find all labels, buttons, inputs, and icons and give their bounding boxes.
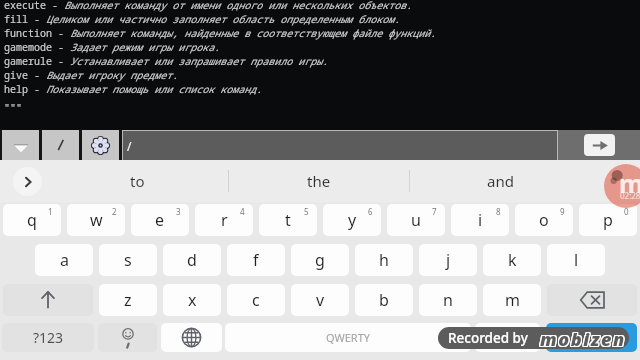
button[interactable]: . [475,323,540,352]
button[interactable]: g [291,244,349,276]
staticText: 1 [48,206,53,217]
button[interactable]: j [419,244,477,276]
staticText: b [379,289,389,311]
staticText: 6 [368,206,373,217]
button[interactable]: m [483,284,541,316]
staticText: Показывает помощь или список команд. [46,82,262,96]
staticText: g [315,249,325,271]
staticText: f [253,249,259,271]
staticText: z [124,289,132,311]
staticText: o [539,209,549,231]
button[interactable]: y [323,204,381,236]
button[interactable]: Shift [3,284,93,316]
staticText: mobizen [540,327,626,349]
staticText: a [60,249,69,271]
button[interactable]: b [355,284,413,316]
button[interactable]: Enter [546,323,637,352]
button[interactable]: x [163,284,221,316]
button[interactable]: Settings [82,130,119,160]
button[interactable]: to [47,160,228,202]
staticText: r [221,209,228,231]
button[interactable]: the [229,160,409,202]
button[interactable]: Backspace [547,284,637,316]
staticText: gamemode - [4,40,70,54]
staticText: . [505,327,510,349]
button[interactable]: ?123 [2,323,94,352]
button[interactable]: Expand suggestions [13,167,42,196]
staticText: mobizen [541,327,627,349]
button[interactable]: Command history [2,130,39,160]
staticText: l [574,249,579,271]
staticText: e [155,209,165,231]
button[interactable]: QWERTY [225,323,471,352]
button[interactable]: k [483,244,541,276]
staticText: mobizen [540,327,626,348]
button[interactable]: f [227,244,285,276]
button[interactable]: q [3,204,61,236]
staticText: h [379,249,389,271]
staticText: n [443,289,453,311]
button[interactable]: Recording indicator [604,164,640,208]
staticText: 8 [496,206,501,217]
button[interactable]: and [410,160,590,202]
button[interactable]: r [195,204,253,236]
button[interactable]: l [547,244,605,276]
button[interactable]: p [579,204,637,236]
staticText: q [27,209,37,231]
staticText: Recorded by [448,329,528,347]
button[interactable]: d [163,244,221,276]
button[interactable]: u [387,204,445,236]
button[interactable]: a [35,244,93,276]
staticText: mobizen [541,327,627,348]
staticText: Выполняет команду от имени одного или не… [64,0,412,12]
button[interactable]: c [227,284,285,316]
button[interactable]: n [419,284,477,316]
button[interactable]: Send [584,134,615,156]
staticText: mobizen [540,327,626,349]
button[interactable]: Change language [161,323,222,352]
staticText: 9 [560,206,565,217]
button[interactable]: o [515,204,573,236]
staticText: mobizen [539,328,625,349]
staticText: p [603,209,613,231]
staticText: fill - [4,12,46,26]
staticText: execute - [4,0,64,12]
staticText: mobizen [541,328,627,349]
button[interactable]: s [99,244,157,276]
button[interactable]: / [123,131,557,160]
staticText: Целиком или частично заполняет область о… [46,12,400,26]
staticText: 4 [240,206,245,217]
staticText: function - [4,26,70,40]
button[interactable]: Emoji [98,323,157,352]
staticText: Устанавливает или запрашивает правило иг… [70,54,328,68]
staticText: to [130,171,145,191]
staticText: s [124,249,132,271]
staticText: x [188,289,197,311]
staticText: 0 [624,206,629,217]
button[interactable]: i [451,204,509,236]
staticText: v [316,289,325,311]
staticText: the [307,171,331,191]
button[interactable]: h [355,244,413,276]
button[interactable]: v [291,284,349,316]
button[interactable]: e [131,204,189,236]
staticText: and [487,171,514,191]
staticText: 5 [304,206,309,217]
staticText: 7 [432,206,437,217]
staticText: c [252,289,260,311]
staticText: mobizen [540,328,626,349]
staticText: 2 [112,206,117,217]
staticText: / [127,138,132,154]
button[interactable]: w [67,204,125,236]
staticText: u [411,209,421,231]
staticText: k [508,249,517,271]
staticText: mobizen [539,327,625,348]
button[interactable]: t [259,204,317,236]
staticText: i [478,209,483,231]
staticText: 02:28 [620,190,640,201]
staticText: help - [4,82,46,96]
button[interactable]: Slash [42,130,79,160]
button[interactable]: z [99,284,157,316]
staticText: mobizen [539,327,625,349]
staticText: give - [4,68,46,82]
